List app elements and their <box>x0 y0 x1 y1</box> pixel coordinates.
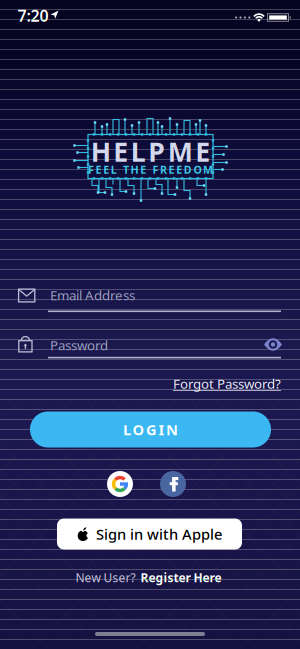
staticText: 7:20 <box>17 5 48 26</box>
staticText: New User? <box>75 569 135 585</box>
button[interactable]: Password <box>18 332 281 359</box>
button[interactable]: Register Here <box>140 569 221 585</box>
button[interactable]: Forgot Password? <box>81 375 281 392</box>
staticText: Register Here <box>140 569 221 585</box>
staticText: FEEL THE FREEDOM <box>88 162 213 177</box>
staticText: LOGIN <box>123 420 178 439</box>
staticText: HELPME <box>91 134 210 169</box>
button[interactable]: Email Address <box>18 286 281 313</box>
staticText: Password <box>50 336 108 354</box>
button[interactable] <box>262 335 283 353</box>
staticText: Email Address <box>50 286 135 304</box>
button[interactable] <box>107 471 133 497</box>
button[interactable] <box>160 471 186 497</box>
staticText: Forgot Password? <box>173 375 281 392</box>
staticText: Sign in with Apple <box>96 524 222 544</box>
button[interactable]: LOGIN <box>30 411 271 447</box>
button[interactable]: Sign in with Apple <box>57 518 242 549</box>
